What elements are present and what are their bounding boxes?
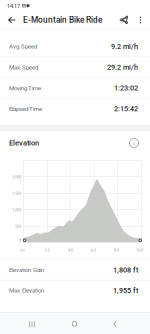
- staticText: 1,000: [12, 207, 21, 212]
- staticText: 6.0: [90, 247, 95, 252]
- button[interactable]: Home: [53, 313, 95, 334]
- button[interactable]: Share: [116, 11, 132, 29]
- staticText: 4.0: [68, 247, 73, 252]
- button[interactable]: Avg Speed: [0, 36, 150, 57]
- staticText: Avg Speed: [9, 43, 37, 50]
- staticText: 1,808 ft: [113, 266, 138, 274]
- staticText: 14:17: [7, 2, 20, 9]
- staticText: Max Elevation: [9, 287, 44, 294]
- button[interactable]: More options: [135, 11, 146, 29]
- staticText: E-Mountain Bike Ride: [23, 15, 102, 25]
- staticText: 10.0: [136, 247, 143, 252]
- button[interactable]: Max Speed: [0, 57, 150, 78]
- staticText: mi: [20, 247, 25, 252]
- staticText: 8.0: [114, 247, 119, 252]
- staticText: 2:15:42: [114, 105, 138, 113]
- staticText: 29.2 mi/h: [107, 63, 138, 71]
- staticText: 500: [15, 224, 21, 229]
- button[interactable]: Elevation Gain: [0, 260, 150, 280]
- staticText: Elevation Gain: [9, 266, 44, 274]
- button[interactable]: Moving Time: [0, 78, 150, 98]
- staticText: Moving Time: [9, 84, 41, 92]
- staticText: 2.0: [44, 247, 49, 252]
- staticText: 1,500: [12, 191, 21, 196]
- button[interactable]: Info: [127, 136, 141, 150]
- staticText: 1:23:02: [114, 84, 138, 92]
- staticText: 2,000: [12, 174, 21, 179]
- staticText: 9.2 mi/h: [111, 42, 138, 51]
- staticText: Elevation: [9, 139, 39, 147]
- button[interactable]: Elapsed Time: [0, 99, 150, 119]
- button[interactable]: Back: [94, 313, 136, 334]
- staticText: Elapsed Time: [9, 105, 42, 112]
- staticText: 1,955 ft: [113, 286, 138, 295]
- staticText: Max Speed: [9, 64, 38, 71]
- button[interactable]: Recent apps: [11, 314, 53, 334]
- button[interactable]: Back: [4, 11, 20, 29]
- button[interactable]: Max Elevation: [0, 280, 150, 301]
- staticText: ft: [19, 237, 21, 242]
